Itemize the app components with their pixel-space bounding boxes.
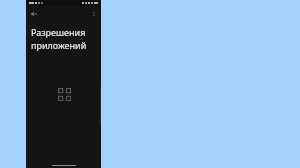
button[interactable]: Back xyxy=(28,8,39,19)
button[interactable]: More options xyxy=(88,8,99,19)
staticText: Разрешения xyxy=(31,26,86,38)
button[interactable]: App permissions xyxy=(55,85,73,103)
staticText: приложений xyxy=(31,39,87,51)
